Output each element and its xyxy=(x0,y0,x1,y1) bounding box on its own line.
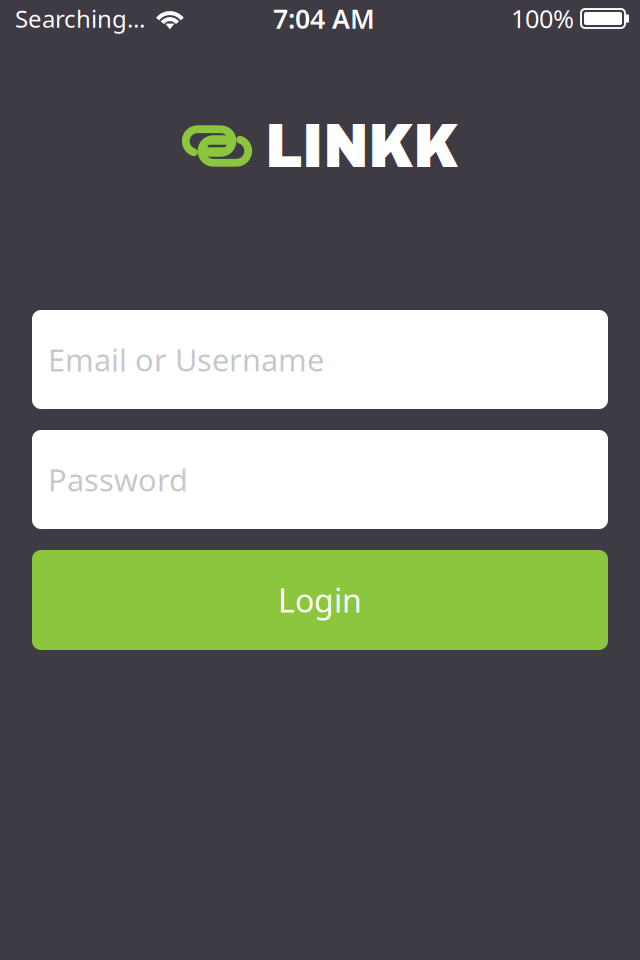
staticText: 100% xyxy=(511,2,574,35)
staticText: 7:04 AM xyxy=(273,1,375,36)
staticText: Searching... xyxy=(15,3,145,34)
button[interactable]: Login xyxy=(32,550,608,650)
staticText: Password xyxy=(48,459,188,500)
staticText: Email or Username xyxy=(48,339,324,380)
button[interactable]: Email or Username xyxy=(32,310,608,409)
staticText: Login xyxy=(278,579,362,621)
staticText: LINKK xyxy=(265,112,458,180)
button[interactable]: Password xyxy=(32,430,608,529)
